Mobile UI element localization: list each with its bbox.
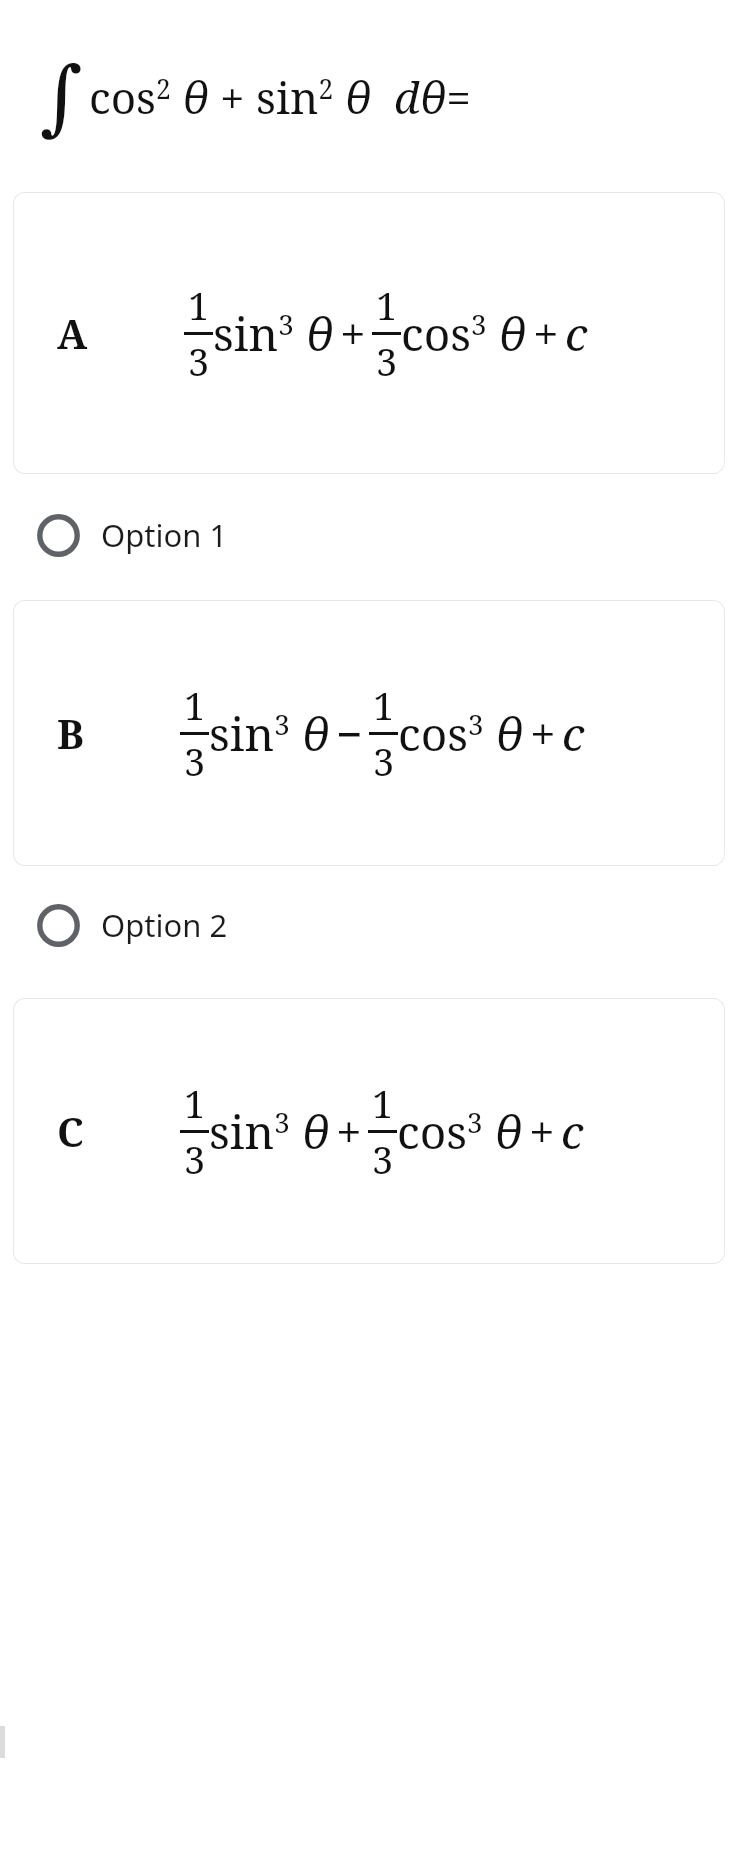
staticText: cos3 θ xyxy=(401,302,527,365)
staticText: 3 xyxy=(188,336,210,387)
staticText: c xyxy=(562,702,585,765)
button[interactable]: Select Option 2 xyxy=(0,888,738,962)
staticText: 1 xyxy=(184,680,206,731)
staticText: + xyxy=(530,702,556,765)
other: Select Option 2 xyxy=(37,904,80,947)
staticText: 3 xyxy=(184,736,206,787)
staticText: A xyxy=(57,306,88,360)
staticText: + xyxy=(340,302,366,365)
staticText: 3 xyxy=(184,1134,206,1185)
button[interactable]: Select Option 1 xyxy=(0,498,738,572)
button[interactable]: A xyxy=(13,192,725,474)
staticText: c xyxy=(565,302,588,365)
staticText: cos3 θ xyxy=(397,1100,523,1163)
staticText: 3 xyxy=(372,1134,394,1185)
staticText: 3 xyxy=(373,736,395,787)
other: Select Option 1 xyxy=(37,514,80,557)
staticText: + xyxy=(533,302,559,365)
staticText: sin3 θ xyxy=(209,1100,330,1163)
staticText: + xyxy=(529,1100,555,1163)
staticText: Option 1 xyxy=(101,514,228,556)
staticText: 1 xyxy=(373,680,395,731)
staticText: 1 xyxy=(376,280,398,331)
staticText: 1 xyxy=(184,1078,206,1129)
staticText: 3 xyxy=(376,336,398,387)
staticText: − xyxy=(336,702,363,765)
button[interactable]: B xyxy=(13,600,725,866)
staticText: Option 2 xyxy=(101,904,228,946)
staticText: ∫ xyxy=(40,49,83,144)
staticText: sin3 θ xyxy=(213,302,334,365)
staticText: 1 xyxy=(188,280,210,331)
staticText: cos3 θ xyxy=(398,702,524,765)
staticText: B xyxy=(57,706,84,760)
staticText: C xyxy=(57,1104,84,1158)
staticText: c xyxy=(561,1100,584,1163)
staticText: sin3 θ xyxy=(209,702,330,765)
button[interactable]: C xyxy=(13,998,725,1264)
staticText: cos2 θ + sin2 θ dθ= xyxy=(89,67,471,127)
staticText: 1 xyxy=(372,1078,394,1129)
staticText: + xyxy=(336,1100,362,1163)
